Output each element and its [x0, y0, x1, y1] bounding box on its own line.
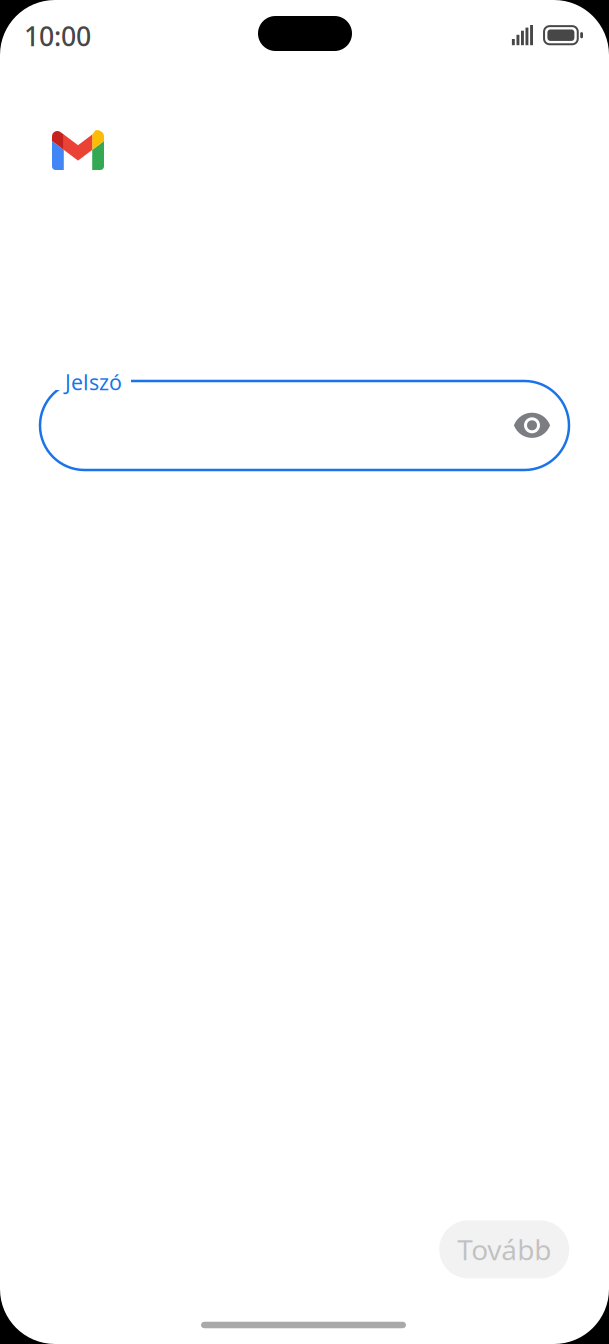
button[interactable]: Tovább [439, 1220, 569, 1278]
button[interactable]: Jelszó [40, 381, 569, 470]
staticText: Jelszó [65, 368, 122, 396]
button[interactable]: Show password [510, 408, 554, 442]
staticText: 10:00 [24, 18, 91, 54]
staticText: Tovább [457, 1231, 551, 1268]
